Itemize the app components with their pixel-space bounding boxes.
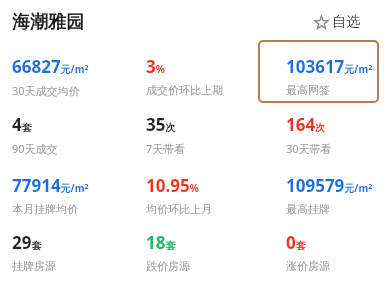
button[interactable]: 35次 — [146, 113, 186, 156]
staticText: 4套 — [12, 113, 32, 136]
button[interactable]: 77914元/m2 — [12, 174, 89, 216]
button[interactable]: 109579元/m2 — [286, 174, 373, 216]
staticText: 30天成交均价 — [12, 83, 80, 98]
staticText: 10.95% — [146, 174, 199, 197]
staticText: 77914元/m2 — [12, 174, 89, 197]
staticText: 最高网签 — [286, 83, 330, 97]
staticText: 挂牌房源 — [12, 259, 56, 273]
button[interactable]: 103617元/m2 — [286, 55, 373, 97]
staticText: 本月挂牌均价 — [12, 202, 78, 216]
staticText: 海潮雅园 — [12, 11, 84, 34]
staticText: 29套 — [12, 231, 42, 254]
staticText: 90天成交 — [12, 141, 58, 156]
staticText: 30天带看 — [286, 141, 332, 156]
button[interactable]: 164次 — [286, 113, 332, 156]
staticText: 涨价房源 — [286, 259, 330, 273]
staticText: 164次 — [286, 113, 326, 136]
staticText: 103617元/m2 — [286, 55, 373, 78]
staticText: 66827元/m2 — [12, 55, 89, 78]
staticText: 109579元/m2 — [286, 174, 373, 197]
staticText: 35次 — [146, 113, 176, 136]
button[interactable]: 29套 — [12, 231, 56, 273]
staticText: 0套 — [286, 231, 306, 254]
staticText: 3% — [146, 55, 165, 78]
button[interactable]: 4套 — [12, 113, 58, 156]
staticText: 7天带看 — [146, 141, 186, 156]
staticText: 跌价房源 — [146, 259, 190, 273]
button[interactable]: 18套 — [146, 231, 190, 273]
button[interactable]: 66827元/m2 — [12, 55, 89, 98]
staticText: 自选 — [332, 13, 360, 31]
staticText: 最高挂牌 — [286, 202, 330, 216]
staticText: 18套 — [146, 231, 176, 254]
button[interactable]: 3% — [146, 55, 223, 97]
staticText: 成交价环比上期 — [146, 83, 223, 97]
staticText: 均价环比上月 — [146, 202, 212, 216]
button[interactable]: 10.95% — [146, 174, 212, 216]
button[interactable]: 自选 — [312, 11, 362, 33]
button[interactable]: 0套 — [286, 231, 330, 273]
